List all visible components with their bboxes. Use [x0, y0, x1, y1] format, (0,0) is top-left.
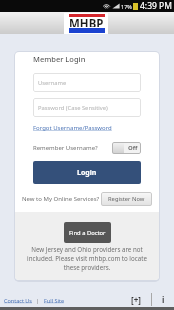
staticText: Member Login — [33, 54, 86, 64]
button[interactable]: Add — [121, 290, 151, 308]
staticText: 4:39 PM — [140, 0, 172, 12]
button[interactable]: Forgot Username/Password — [33, 124, 112, 132]
staticText: Find a Doctor — [69, 229, 106, 237]
button[interactable]: Find a Doctor — [64, 222, 111, 243]
staticText: New Jersey and Ohio providers are not in… — [26, 245, 148, 272]
button[interactable]: Contact Us — [4, 297, 32, 304]
button[interactable]: Full Site — [44, 297, 65, 304]
staticText: | — [32, 297, 44, 304]
staticText: [+] — [131, 294, 141, 305]
staticText: Login — [77, 168, 97, 178]
staticText: New to My Online Services? — [22, 195, 100, 203]
staticText: Password (Case Sensitive) — [38, 104, 108, 112]
staticText: Off — [128, 144, 138, 152]
staticText: 17% — [121, 3, 132, 10]
button[interactable]: Information — [152, 290, 174, 308]
staticText: i — [162, 294, 165, 305]
button[interactable]: Register Now — [101, 192, 152, 206]
staticText: Remember Username? — [33, 144, 98, 152]
button[interactable]: Username — [33, 73, 141, 92]
staticText: Username — [38, 79, 67, 87]
staticText: MHBP — [69, 16, 104, 27]
button[interactable]: Login — [33, 161, 141, 184]
button[interactable]: Password (Case Sensitive) — [33, 98, 141, 117]
button[interactable]: Remember username toggle, Off — [112, 142, 141, 154]
staticText: Register Now — [108, 195, 145, 203]
